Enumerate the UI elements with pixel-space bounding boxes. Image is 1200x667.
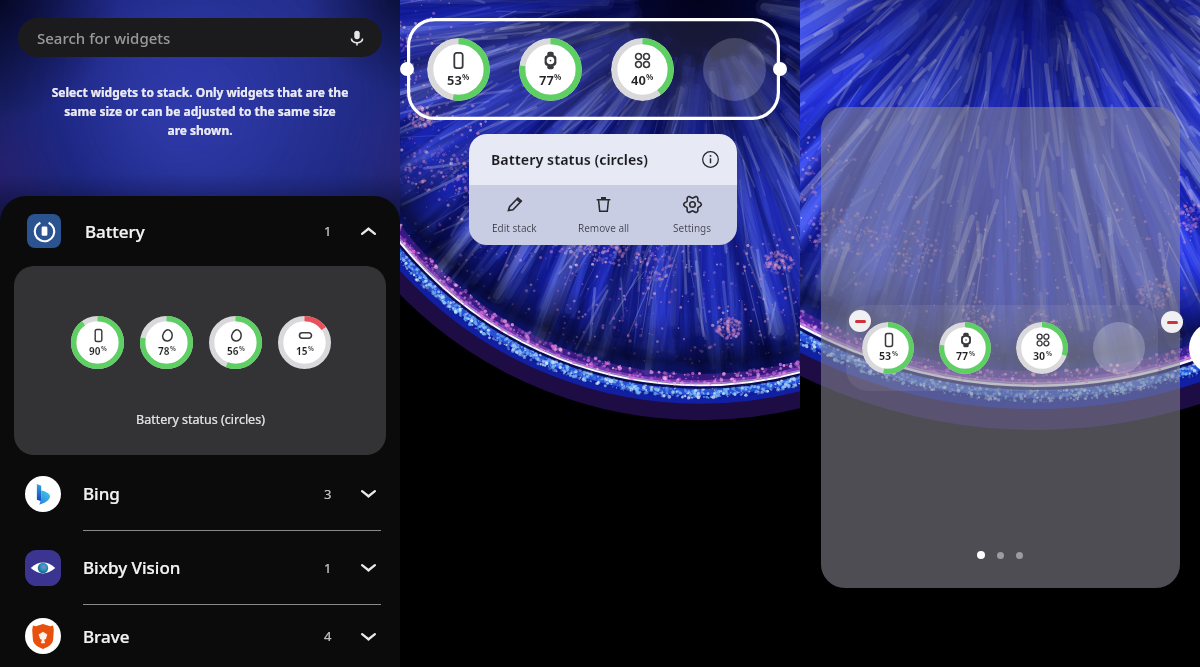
staticText: Bixby Vision <box>83 556 181 579</box>
button[interactable]: Remove widget <box>849 310 871 332</box>
staticText: 1 <box>324 222 332 240</box>
other: Voice search <box>349 30 365 46</box>
staticText: 4 <box>324 627 332 645</box>
button[interactable]: Add widget <box>1093 322 1145 374</box>
staticText: % <box>239 344 245 353</box>
staticText: Edit stack <box>492 221 537 235</box>
button[interactable]: Battery 40 percent <box>611 38 674 101</box>
staticText: Remove all <box>578 221 630 235</box>
staticText: Search for widgets <box>37 28 171 48</box>
staticText: Bing <box>83 482 120 505</box>
staticText: Battery status (circles) <box>136 411 265 428</box>
staticText: % <box>462 71 470 82</box>
staticText: 53 <box>879 349 892 364</box>
staticText: 3 <box>324 485 332 503</box>
staticText: % <box>969 349 975 358</box>
staticText: 53 <box>447 71 462 89</box>
staticText: % <box>1046 349 1052 358</box>
staticText: Battery status (circles) <box>491 150 649 169</box>
staticText: 15 <box>296 344 308 358</box>
staticText: % <box>554 71 562 82</box>
staticText: 90 <box>89 344 101 358</box>
staticText: 30 <box>1033 349 1046 364</box>
staticText: 56 <box>227 344 239 358</box>
button[interactable]: Resize right <box>773 62 787 76</box>
button[interactable]: Battery 77 percent <box>519 38 582 101</box>
button[interactable]: Battery 77 percent <box>939 322 991 374</box>
button[interactable]: Remove widget <box>1161 311 1183 333</box>
button[interactable]: Bixby Vision <box>0 531 400 604</box>
button[interactable]: Settings <box>648 185 737 245</box>
staticText: 77 <box>539 71 554 89</box>
button[interactable]: Battery status (circles) <box>469 134 737 185</box>
staticText: % <box>892 349 898 358</box>
staticText: 1 <box>324 559 332 577</box>
button[interactable]: Bing <box>0 457 400 530</box>
staticText: Brave <box>83 625 130 648</box>
other: Info <box>702 151 719 168</box>
button[interactable]: Battery <box>0 196 400 266</box>
button[interactable]: Search for widgets <box>18 18 382 57</box>
staticText: % <box>101 344 107 353</box>
button[interactable]: Battery 30 percent <box>1016 322 1068 374</box>
staticText: 78 <box>158 344 170 358</box>
staticText: Settings <box>673 221 712 235</box>
button[interactable]: Resize left <box>400 62 414 76</box>
staticText: Battery <box>85 220 145 243</box>
button[interactable]: Add widget <box>703 38 766 101</box>
staticText: % <box>646 71 654 82</box>
button[interactable]: Battery 53 percent <box>862 322 914 374</box>
button[interactable]: Remove all <box>559 185 648 245</box>
button[interactable]: Battery 53 percent <box>427 38 490 101</box>
staticText: Select widgets to stack. Only widgets th… <box>12 84 388 138</box>
staticText: 40 <box>631 71 646 89</box>
button[interactable]: Edit stack <box>469 185 559 245</box>
staticText: % <box>170 344 176 353</box>
staticText: 77 <box>956 349 969 364</box>
button[interactable]: Brave <box>0 605 400 667</box>
staticText: % <box>308 344 314 353</box>
button[interactable]: 90 <box>14 266 386 455</box>
